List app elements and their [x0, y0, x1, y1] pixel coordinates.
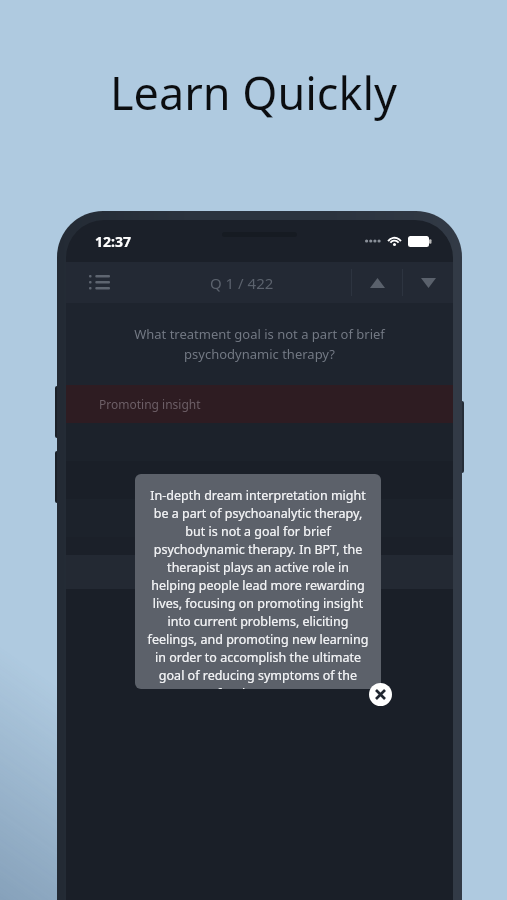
button[interactable]: In-depth dream interpretation might be a… — [135, 474, 381, 689]
staticText: Promoting insight — [99, 396, 201, 412]
button[interactable]: List — [66, 262, 132, 303]
button[interactable]: Next — [403, 262, 453, 303]
staticText: 12:37 — [95, 232, 131, 251]
button[interactable]: Close — [369, 683, 392, 706]
staticText: Reveal — [271, 561, 323, 584]
button[interactable]: Previous — [352, 262, 402, 303]
staticText: Learn Quickly — [110, 62, 398, 123]
staticText: What treatment goal is not a part of bri… — [134, 325, 385, 363]
button[interactable]: Promoting insight — [66, 385, 453, 423]
button[interactable]: Reveal — [66, 555, 453, 589]
staticText: In-depth dream interpretation might be a… — [146, 487, 370, 689]
staticText: Q 1 / 422 — [210, 273, 274, 293]
